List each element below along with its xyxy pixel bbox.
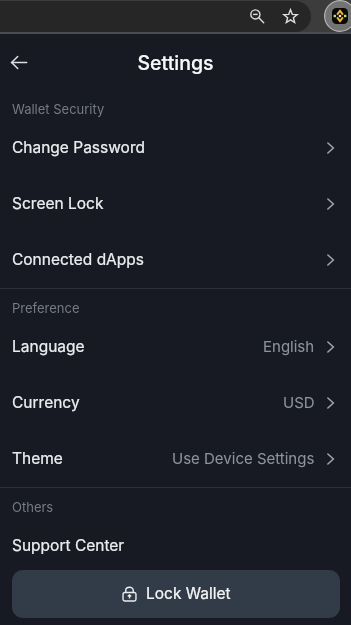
staticText: Lock Wallet (146, 584, 231, 603)
staticText: Connected dApps (12, 250, 144, 269)
button[interactable]: Support Center (0, 518, 351, 574)
button[interactable]: Change Password (0, 120, 351, 176)
staticText: Support Center (12, 536, 125, 555)
staticText: Preference (12, 300, 80, 316)
staticText: USD (283, 393, 315, 411)
button[interactable]: Connected dApps (0, 232, 351, 288)
button[interactable]: Language (0, 319, 351, 375)
button[interactable]: Bookmark (278, 4, 302, 28)
button[interactable]: Zoom out (245, 4, 269, 28)
staticText: Screen Lock (12, 194, 104, 213)
staticText: Settings (137, 51, 214, 75)
button[interactable]: Screen Lock (0, 176, 351, 232)
button[interactable]: Currency (0, 375, 351, 431)
button[interactable]: Back (3, 46, 35, 78)
staticText: Others (12, 499, 54, 515)
button[interactable]: Account (324, 0, 351, 32)
button[interactable]: Lock Wallet (12, 570, 340, 618)
staticText: Wallet Security (12, 101, 105, 117)
button[interactable]: Theme (0, 431, 351, 487)
staticText: Theme (12, 449, 63, 468)
staticText: Currency (12, 393, 80, 412)
staticText: Change Password (12, 138, 145, 157)
staticText: Language (12, 337, 85, 356)
staticText: Use Device Settings (172, 449, 315, 467)
staticText: English (263, 337, 315, 355)
